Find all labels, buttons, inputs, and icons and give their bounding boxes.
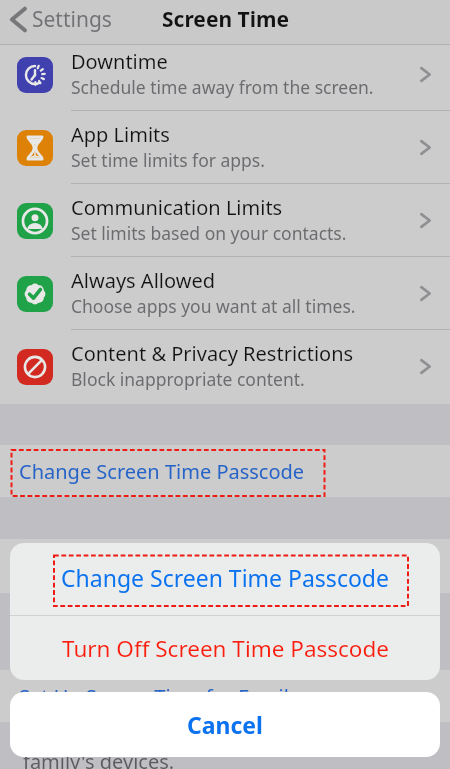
button[interactable]: App Limits: [0, 111, 450, 184]
button[interactable]: Content & Privacy Restrictions: [0, 330, 450, 403]
staticText: Communication Limits: [71, 194, 283, 221]
button[interactable]: Downtime: [0, 38, 450, 111]
staticText: Always Allowed: [71, 267, 215, 294]
button[interactable]: Set Up Screen Time for Family: [0, 670, 450, 722]
button[interactable]: Cancel: [10, 692, 440, 757]
staticText: Change Screen Time Passcode: [61, 562, 389, 593]
staticText: Set limits based on your contacts.: [71, 221, 347, 245]
staticText: Schedule time away from the screen.: [71, 75, 374, 99]
staticText: Set time limits for apps.: [71, 148, 265, 172]
staticText: Change Screen Time Passcode: [19, 458, 305, 485]
button[interactable]: Turn Off Screen Time Passcode: [10, 616, 440, 680]
staticText: Block inappropriate content.: [71, 367, 305, 391]
staticText: Downtime: [71, 48, 168, 75]
button[interactable]: Communication Limits: [0, 184, 450, 257]
staticText: Settings: [32, 5, 112, 34]
staticText: Choose apps you want at all times.: [71, 294, 356, 318]
button[interactable]: Always Allowed: [0, 257, 450, 330]
staticText: Cancel: [187, 709, 263, 740]
staticText: family's devices.: [23, 748, 175, 769]
button[interactable]: Change Screen Time Passcode: [0, 445, 450, 497]
staticText: Turn Off Screen Time Passcode: [62, 633, 389, 664]
staticText: Set Up Screen Time for Family: [19, 683, 300, 710]
button[interactable]: Screen Time for Family: [0, 539, 450, 593]
staticText: App Limits: [71, 121, 170, 148]
button[interactable]: Settings: [0, 0, 450, 45]
button[interactable]: Change Screen Time Passcode: [10, 543, 440, 615]
staticText: Screen Time: [162, 5, 289, 34]
staticText: Content & Privacy Restrictions: [71, 340, 354, 367]
staticText: Screen Time for Family: [19, 553, 233, 580]
